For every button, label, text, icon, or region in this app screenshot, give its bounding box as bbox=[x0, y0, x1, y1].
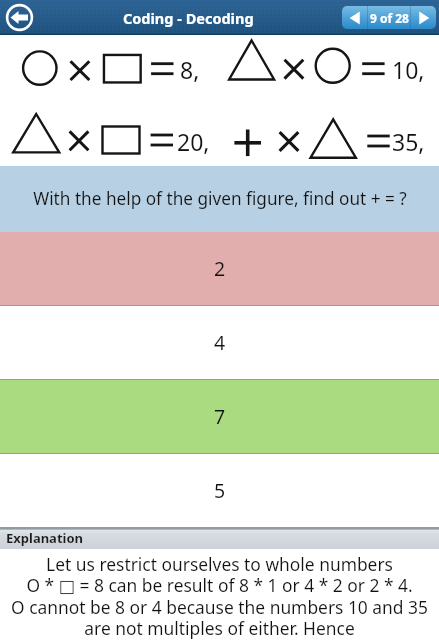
button[interactable]: Next question bbox=[411, 6, 436, 29]
staticText: Coding - Decoding bbox=[123, 8, 254, 28]
staticText: With the help of the given figure, find … bbox=[33, 187, 407, 210]
staticText: 4 bbox=[214, 329, 226, 356]
button[interactable]: 5 bbox=[0, 454, 439, 527]
staticText: Explanation bbox=[6, 529, 84, 547]
button[interactable]: 4 bbox=[0, 306, 439, 379]
button[interactable]: 7 bbox=[0, 380, 439, 453]
button[interactable]: Previous question bbox=[342, 6, 367, 29]
staticText: 5 bbox=[214, 477, 226, 504]
staticText: 7 bbox=[214, 403, 226, 430]
staticText: 10, bbox=[392, 54, 425, 85]
button[interactable]: 2 bbox=[0, 232, 439, 305]
staticText: 2 bbox=[214, 255, 226, 282]
staticText: Let us restrict ourselves to whole numbe… bbox=[0, 552, 439, 640]
staticText: 20, bbox=[177, 126, 210, 157]
staticText: 9 of 28 bbox=[370, 10, 409, 26]
staticText: 8, bbox=[180, 54, 200, 85]
button[interactable]: Back bbox=[5, 3, 34, 32]
staticText: 35, bbox=[392, 126, 425, 157]
